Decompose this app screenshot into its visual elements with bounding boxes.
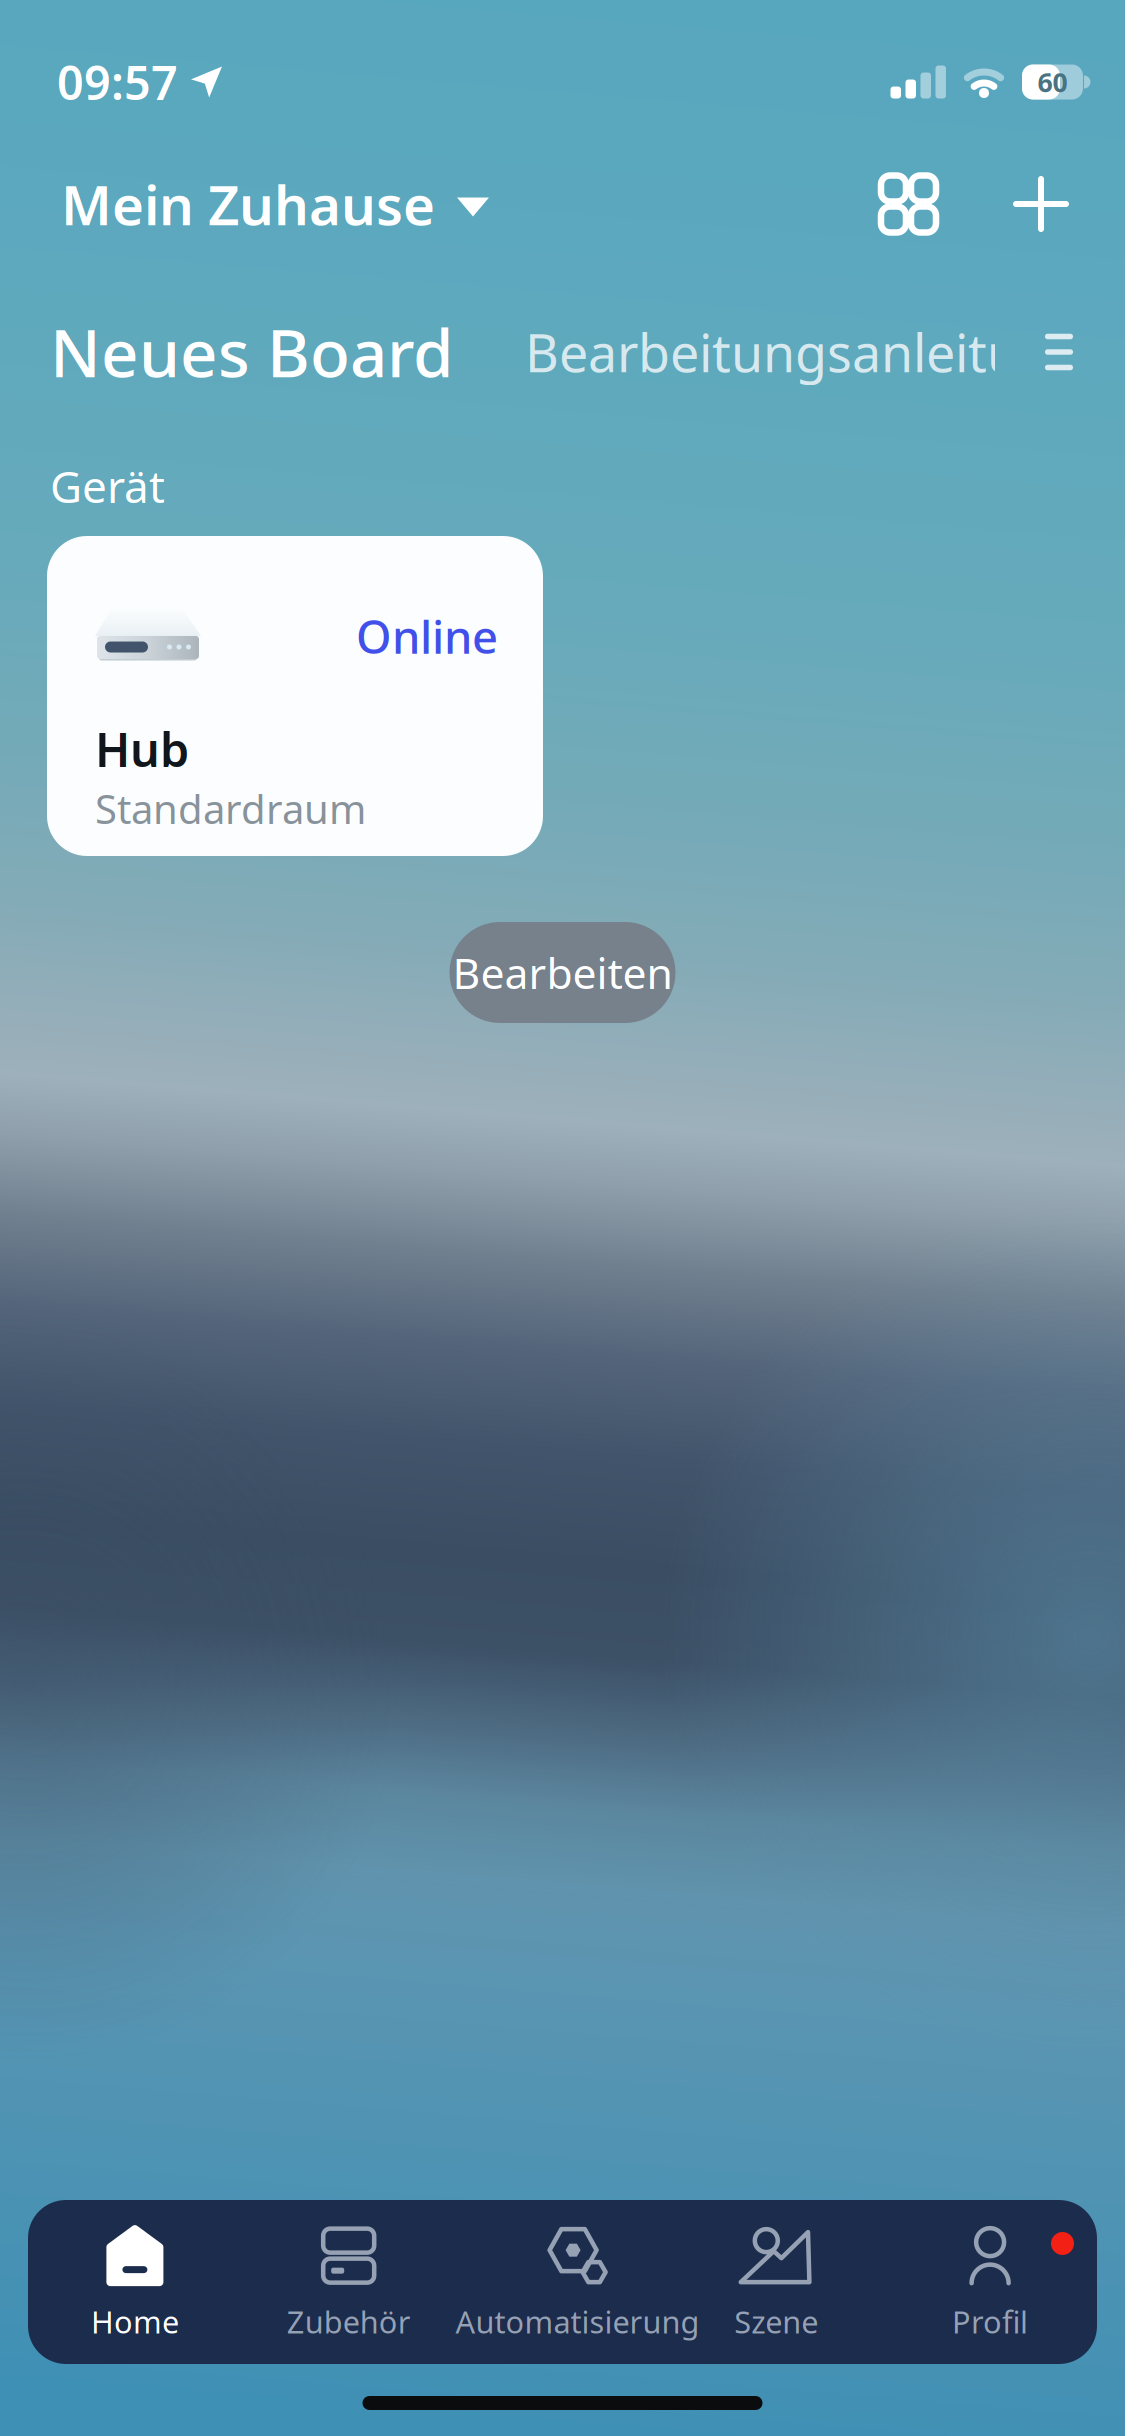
button[interactable]: Profil: [883, 2226, 1097, 2342]
button[interactable]: Automatisierung: [456, 2226, 669, 2342]
button[interactable]: Home: [28, 2226, 242, 2342]
button[interactable]: Boards: [881, 175, 936, 232]
button[interactable]: Bearbeiten: [449, 922, 675, 1023]
button[interactable]: Mein Zuhause: [61, 168, 489, 240]
staticText: Profil: [952, 2301, 1028, 2342]
staticText: Zubehör: [287, 2301, 411, 2342]
staticText: Online: [356, 606, 498, 666]
staticText: Gerät: [50, 457, 165, 515]
button[interactable]: Boards verwalten: [1045, 334, 1073, 370]
staticText: Mein Zuhause: [61, 168, 435, 240]
staticText: Home: [91, 2301, 179, 2342]
staticText: Szene: [734, 2301, 818, 2342]
staticText: 09:57: [57, 51, 178, 113]
staticText: Standardraum: [95, 782, 366, 835]
staticText: Hub: [95, 718, 189, 780]
staticText: Automatisierung: [456, 2301, 700, 2342]
button[interactable]: Online: [47, 536, 543, 856]
staticText: Bearbeitungsanleitung: [525, 317, 1083, 387]
staticText: 60: [1037, 64, 1067, 100]
button[interactable]: Zubehör: [242, 2226, 456, 2342]
button[interactable]: Hinzufügen: [1016, 179, 1066, 229]
button[interactable]: Szene: [669, 2226, 883, 2342]
staticText: Bearbeiten: [452, 944, 672, 1001]
button[interactable]: Bearbeitungsanleitung: [525, 317, 995, 387]
staticText: Neues Board: [50, 309, 454, 395]
